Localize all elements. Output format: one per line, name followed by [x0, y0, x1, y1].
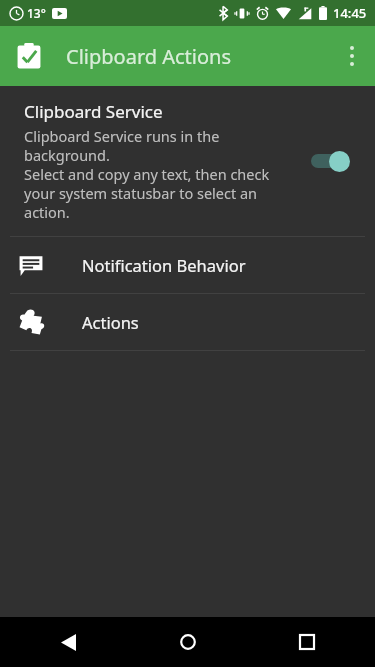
staticText: Actions: [82, 311, 139, 333]
button[interactable]: More options: [329, 26, 375, 86]
staticText: Clipboard Service runs in the background…: [24, 126, 299, 222]
button[interactable]: Recents: [285, 620, 329, 664]
staticText: Notification Behavior: [82, 254, 246, 276]
button[interactable]: Clipboard Service toggle: [307, 143, 359, 179]
staticText: Clipboard Service: [24, 100, 163, 123]
button[interactable]: Back: [46, 620, 90, 664]
button[interactable]: Notification Behavior: [0, 237, 375, 293]
button[interactable]: Clipboard Service: [0, 86, 375, 236]
staticText: 14:45: [333, 4, 367, 22]
staticText: Clipboard Actions: [66, 43, 232, 70]
button[interactable]: Actions: [0, 294, 375, 350]
other: App icon: [14, 41, 44, 71]
staticText: 13°: [27, 5, 46, 21]
button[interactable]: Home: [166, 620, 210, 664]
